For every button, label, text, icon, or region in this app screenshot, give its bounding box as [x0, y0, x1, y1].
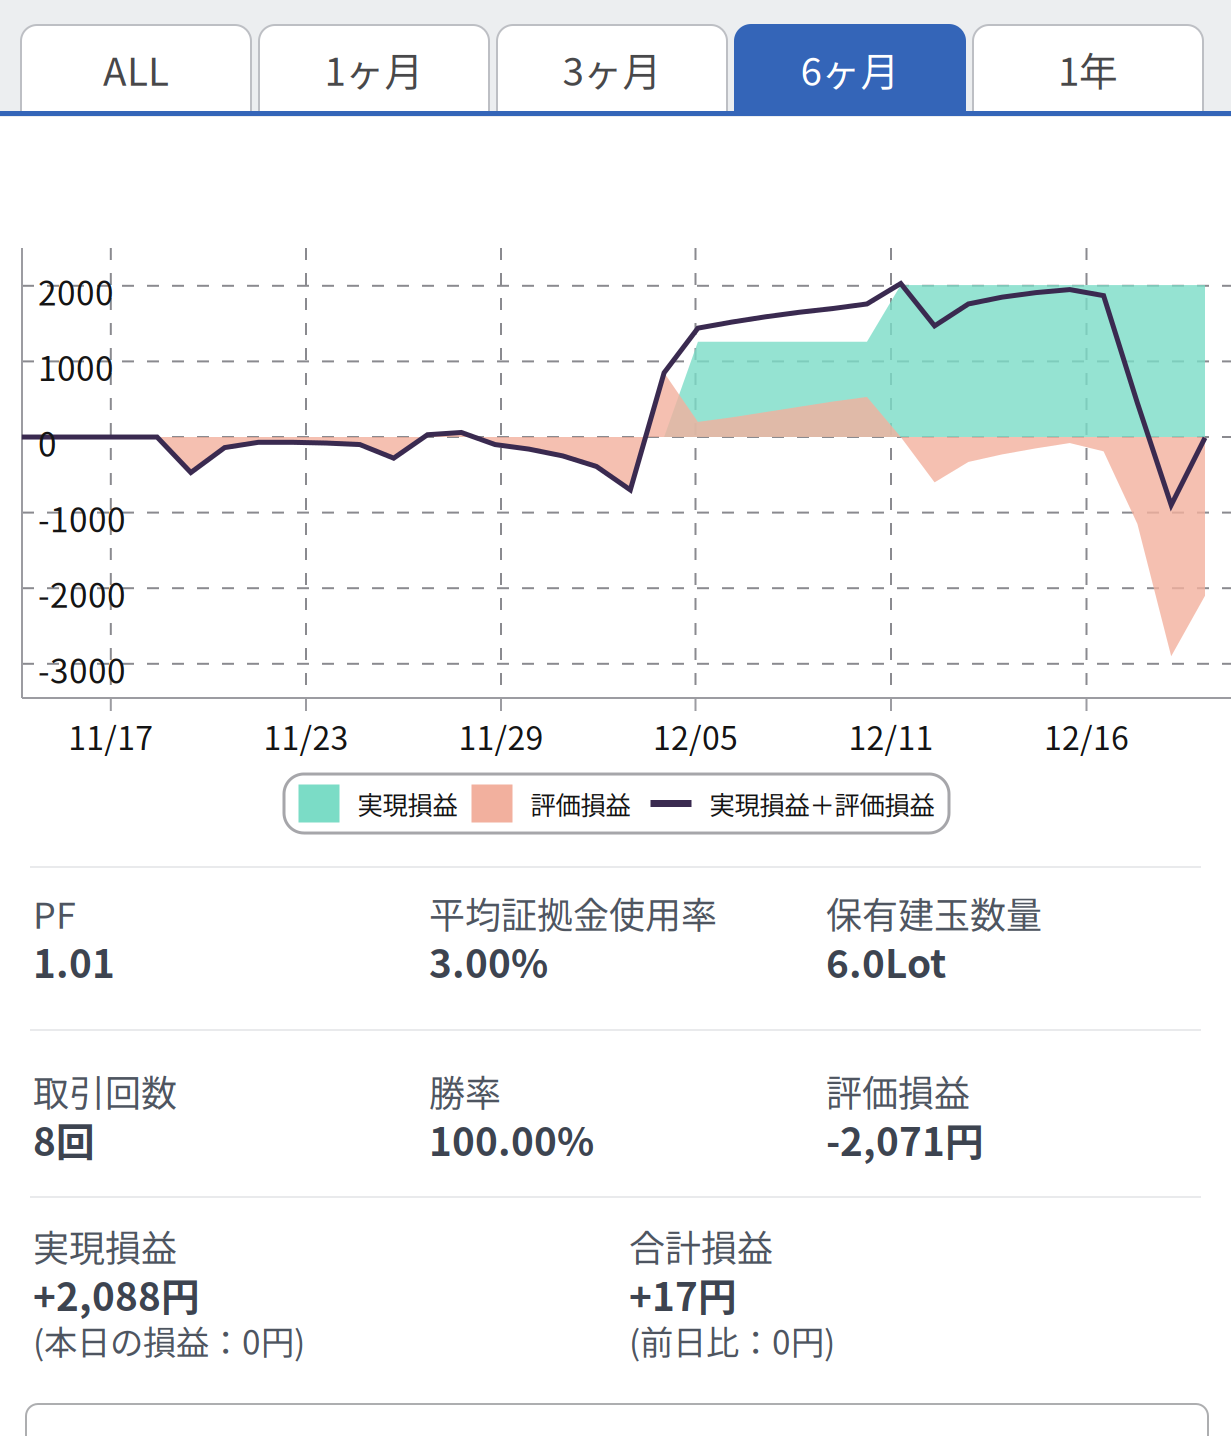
staticText: 6.0Lot: [826, 933, 946, 989]
button[interactable]: ALL: [21, 25, 251, 113]
staticText: ALL: [103, 41, 169, 97]
staticText: -2000: [38, 569, 126, 617]
staticText: -2,071円: [826, 1111, 984, 1167]
staticText: (本日の損益：0円): [33, 1316, 305, 1364]
staticText: 12/05: [653, 713, 738, 759]
staticText: 3ヶ月: [562, 41, 661, 97]
staticText: 保有建玉数量: [826, 887, 1042, 939]
staticText: 1ヶ月: [324, 41, 423, 97]
staticText: 実現損益＋評価損益: [709, 785, 934, 822]
staticText: 12/11: [848, 713, 933, 759]
button[interactable]: 1年: [973, 25, 1203, 113]
button[interactable]: 1ヶ月: [259, 25, 489, 113]
staticText: 3.00%: [429, 933, 548, 989]
button[interactable]: 3ヶ月: [497, 25, 727, 113]
staticText: -3000: [38, 645, 126, 693]
staticText: 6ヶ月: [800, 41, 899, 97]
staticText: 実現損益: [33, 1220, 177, 1272]
staticText: 平均証拠金使用率: [429, 887, 717, 939]
staticText: 100.00%: [429, 1111, 594, 1167]
staticText: 実現損益: [357, 785, 457, 822]
staticText: 合計損益: [629, 1220, 773, 1272]
button[interactable]: 6ヶ月: [735, 25, 965, 113]
staticText: 8回: [33, 1111, 95, 1167]
staticText: 11/29: [458, 713, 543, 759]
staticText: 0: [38, 418, 57, 466]
staticText: 2000: [38, 267, 114, 315]
staticText: +17円: [629, 1266, 737, 1322]
staticText: 評価損益: [826, 1065, 970, 1117]
staticText: 1000: [38, 342, 114, 391]
staticText: 11/23: [263, 713, 348, 759]
staticText: (前日比：0円): [629, 1316, 835, 1364]
staticText: -1000: [38, 494, 126, 542]
staticText: 1年: [1058, 41, 1118, 97]
staticText: 12/16: [1044, 713, 1129, 759]
staticText: 勝率: [429, 1065, 501, 1117]
staticText: 1.01: [33, 933, 115, 989]
staticText: 11/17: [68, 713, 153, 759]
staticText: +2,088円: [33, 1266, 200, 1322]
staticText: PF: [33, 887, 76, 939]
staticText: 評価損益: [530, 785, 630, 822]
staticText: 取引回数: [33, 1065, 177, 1117]
